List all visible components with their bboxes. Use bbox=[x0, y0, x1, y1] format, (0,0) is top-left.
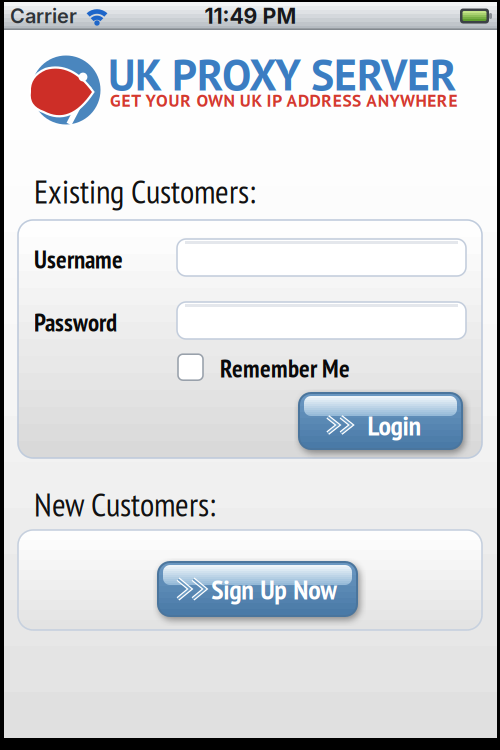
staticText: Login bbox=[367, 407, 421, 443]
staticText: Carrier bbox=[10, 4, 77, 28]
staticText: UK PROXY SERVER bbox=[108, 46, 456, 103]
button[interactable]: Sign Up Now bbox=[157, 561, 358, 617]
staticText: GET YOUR OWN UK IP ADDRESS ANYWHERE bbox=[110, 89, 457, 112]
button[interactable]: Username bbox=[177, 239, 466, 276]
button[interactable]: Login bbox=[298, 392, 463, 450]
button[interactable]: Remember Me bbox=[178, 350, 350, 384]
staticText: Existing Customers: bbox=[34, 170, 256, 213]
button[interactable]: Password bbox=[177, 302, 466, 339]
staticText: Remember Me bbox=[220, 352, 350, 384]
staticText: 11:49 PM bbox=[204, 3, 296, 29]
staticText: Password bbox=[34, 306, 117, 338]
staticText: New Customers: bbox=[34, 483, 216, 526]
staticText: Username bbox=[34, 243, 123, 275]
staticText: Sign Up Now bbox=[211, 571, 337, 607]
